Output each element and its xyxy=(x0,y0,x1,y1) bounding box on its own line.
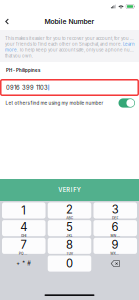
staticText: 1 xyxy=(21,204,26,217)
staticText: 6 xyxy=(112,220,119,234)
staticText: 7 xyxy=(21,238,27,252)
staticText: 9 xyxy=(112,238,119,252)
button[interactable]: Back xyxy=(0,13,15,29)
button[interactable]: 2 xyxy=(48,202,91,218)
button[interactable]: + * # xyxy=(2,255,45,272)
staticText: PH - Philippines xyxy=(6,68,40,73)
staticText: 0 xyxy=(66,257,73,270)
staticText: + * # xyxy=(16,260,31,267)
staticText: WXYZ xyxy=(110,251,120,255)
staticText: 3 xyxy=(112,203,119,216)
staticText: GHI xyxy=(21,234,27,238)
staticText: 2 xyxy=(66,203,73,216)
staticText: JKL xyxy=(66,234,73,238)
button[interactable]: 1 xyxy=(2,202,45,218)
staticText: DEF xyxy=(112,216,119,220)
button[interactable]: 8 xyxy=(48,238,91,254)
staticText: that you own. xyxy=(5,53,33,58)
button[interactable]: 5 xyxy=(48,220,91,236)
button[interactable]: 3 xyxy=(93,202,137,218)
staticText: Mobile Number xyxy=(44,17,94,26)
button[interactable]: 4 xyxy=(2,220,45,236)
staticText: 8 xyxy=(66,238,73,252)
staticText: TUV xyxy=(66,251,73,255)
button[interactable]: 7 xyxy=(2,238,45,254)
button[interactable]: Let others find me using my mobile numbe… xyxy=(0,96,139,110)
staticText: VERIFY xyxy=(58,186,81,193)
staticText: 4 xyxy=(20,220,27,234)
staticText: This makes it easier for you to recover … xyxy=(5,36,135,41)
button[interactable]: VERIFY xyxy=(0,179,139,201)
button[interactable]: PH - Philippines xyxy=(0,62,139,79)
staticText: 0916 399 1103 xyxy=(6,84,48,91)
button[interactable]: 9 xyxy=(93,238,137,254)
staticText: Let others find me using my mobile numbe… xyxy=(5,100,103,106)
staticText: ABC xyxy=(66,216,73,220)
button[interactable]: 0916 399 1103 xyxy=(0,79,139,96)
staticText: PQRS xyxy=(19,251,28,255)
button[interactable]: Delete xyxy=(93,255,137,272)
staticText: 5 xyxy=(66,220,73,234)
button[interactable]: 0 xyxy=(48,255,91,272)
staticText: . To help keep your account safe, only u… xyxy=(17,47,135,53)
staticText: more xyxy=(5,47,17,53)
button[interactable]: 6 xyxy=(93,220,137,236)
staticText: MNO xyxy=(110,234,120,238)
staticText: your friends to find each other on Snapc… xyxy=(5,42,123,47)
staticText: Learn xyxy=(123,42,135,47)
